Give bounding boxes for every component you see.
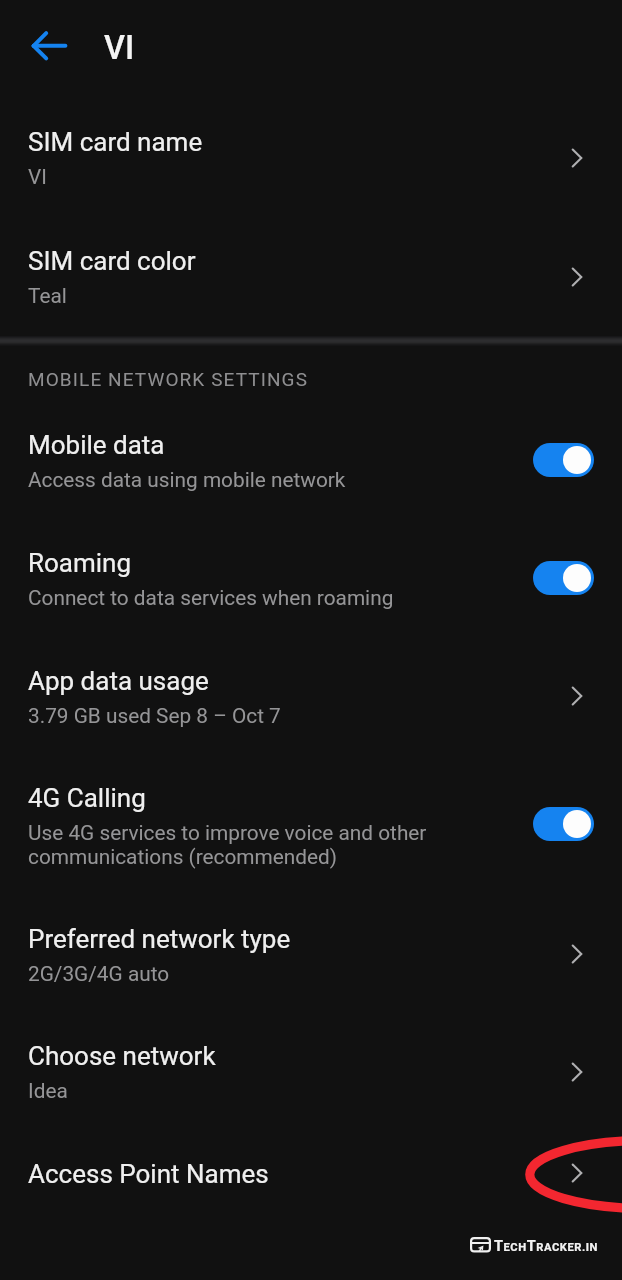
- staticText: Choose network: [28, 1041, 216, 1071]
- staticText: Connect to data services when roaming: [28, 586, 394, 610]
- staticText: App data usage: [28, 666, 209, 696]
- button[interactable]: Navigate up: [23, 22, 69, 68]
- staticText: VI: [104, 29, 135, 67]
- button[interactable]: Mobile data: [0, 402, 622, 519]
- staticText: 3.79 GB used Sep 8 – Oct 7: [28, 704, 281, 728]
- staticText: MOBILE NETWORK SETTINGS: [28, 368, 309, 390]
- staticText: Roaming: [28, 548, 132, 578]
- staticText: Mobile data: [28, 430, 165, 460]
- staticText: Access Point Names: [28, 1159, 269, 1189]
- staticText: SIM card name: [28, 127, 203, 157]
- button[interactable]: Access Point Names: [0, 1131, 622, 1221]
- staticText: VI: [28, 165, 47, 189]
- staticText: TECHTRACKER.IN: [494, 1238, 599, 1255]
- button[interactable]: Preferred network type: [0, 896, 622, 1013]
- staticText: Use 4G services to improve voice and oth…: [28, 821, 442, 870]
- button[interactable]: Choose network: [0, 1013, 622, 1130]
- button[interactable]: 4G Calling: [533, 807, 594, 841]
- button[interactable]: SIM card name: [0, 100, 622, 217]
- staticText: Access data using mobile network: [28, 468, 346, 492]
- staticText: Preferred network type: [28, 924, 291, 954]
- button[interactable]: App data usage: [0, 638, 622, 755]
- button[interactable]: Roaming: [533, 561, 594, 595]
- staticText: 2G/3G/4G auto: [28, 962, 170, 986]
- button[interactable]: 4G Calling: [0, 756, 622, 896]
- button[interactable]: Roaming: [0, 520, 622, 637]
- staticText: Idea: [28, 1079, 68, 1103]
- staticText: SIM card color: [28, 246, 196, 276]
- button[interactable]: SIM card color: [0, 218, 622, 335]
- staticText: Teal: [28, 284, 67, 308]
- button[interactable]: Mobile data: [533, 443, 594, 477]
- staticText: 4G Calling: [28, 783, 146, 813]
